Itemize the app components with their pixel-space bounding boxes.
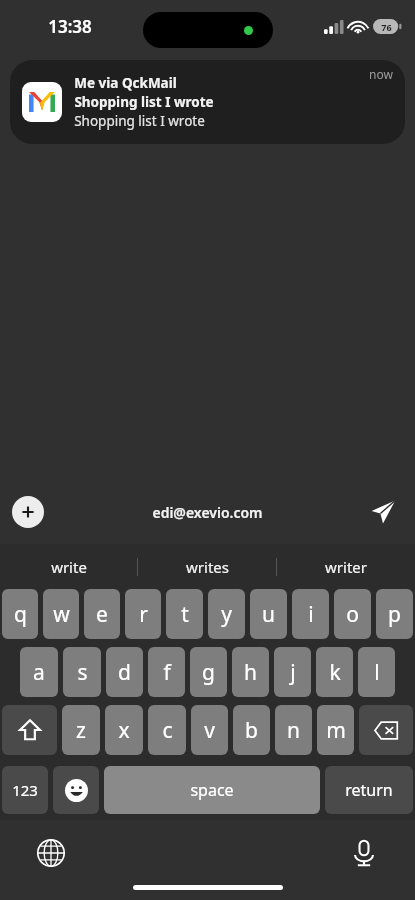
button[interactable]: k bbox=[316, 647, 353, 697]
button[interactable]: p bbox=[376, 589, 413, 639]
button[interactable]: Backspace bbox=[359, 705, 413, 755]
button[interactable]: t bbox=[166, 589, 203, 639]
button[interactable]: f bbox=[148, 647, 185, 697]
button[interactable]: z bbox=[62, 705, 100, 755]
staticText: t bbox=[181, 600, 189, 629]
staticText: o bbox=[346, 600, 359, 629]
button[interactable]: 123 bbox=[2, 766, 48, 814]
button[interactable]: s bbox=[63, 647, 101, 697]
staticText: c bbox=[162, 716, 173, 745]
button[interactable]: h bbox=[232, 647, 269, 697]
staticText: writes bbox=[186, 557, 229, 577]
staticText: z bbox=[76, 716, 86, 745]
staticText: a bbox=[33, 658, 45, 687]
staticText: space bbox=[190, 779, 234, 801]
button[interactable]: y bbox=[208, 589, 245, 639]
staticText: j bbox=[290, 658, 296, 687]
button[interactable]: write bbox=[0, 544, 137, 589]
staticText: h bbox=[244, 658, 257, 687]
staticText: b bbox=[245, 716, 258, 745]
button[interactable]: Voice input bbox=[343, 832, 385, 874]
button[interactable]: l bbox=[358, 647, 395, 697]
staticText: edi@exevio.com bbox=[152, 503, 263, 522]
staticText: s bbox=[77, 658, 88, 687]
staticText: n bbox=[287, 716, 300, 745]
staticText: f bbox=[163, 658, 171, 687]
button[interactable]: r bbox=[125, 589, 161, 639]
staticText: 123 bbox=[12, 780, 38, 800]
staticText: Shopping list I wrote bbox=[74, 93, 214, 111]
button[interactable]: j bbox=[274, 647, 311, 697]
button[interactable]: b bbox=[233, 705, 270, 755]
button[interactable]: g bbox=[190, 647, 227, 697]
button[interactable]: Add attachment bbox=[12, 496, 44, 528]
staticText: Me via QckMail bbox=[74, 74, 177, 92]
staticText: y bbox=[221, 600, 232, 629]
button[interactable]: m bbox=[317, 705, 354, 755]
button[interactable]: Change keyboard bbox=[30, 832, 72, 874]
button[interactable]: c bbox=[148, 705, 186, 755]
button[interactable]: x bbox=[105, 705, 143, 755]
button[interactable]: writer bbox=[277, 544, 415, 589]
button[interactable]: q bbox=[2, 589, 38, 639]
staticText: x bbox=[118, 716, 130, 745]
staticText: Shopping list I wrote bbox=[74, 112, 205, 130]
staticText: now bbox=[369, 66, 393, 82]
button[interactable]: w bbox=[43, 589, 79, 639]
staticText: m bbox=[326, 716, 346, 745]
button[interactable]: Send bbox=[363, 492, 403, 532]
staticText: k bbox=[329, 658, 341, 687]
staticText: v bbox=[204, 716, 215, 745]
staticText: return bbox=[345, 779, 393, 801]
button[interactable]: o bbox=[334, 589, 371, 639]
button[interactable]: Shift bbox=[2, 705, 57, 755]
button[interactable]: space bbox=[104, 766, 320, 814]
button[interactable]: i bbox=[292, 589, 329, 639]
staticText: write bbox=[51, 557, 87, 577]
button[interactable]: writes bbox=[138, 544, 276, 589]
staticText: 13:38 bbox=[48, 15, 92, 38]
staticText: writer bbox=[325, 557, 367, 577]
staticText: u bbox=[262, 600, 275, 629]
staticText: 76 bbox=[381, 21, 392, 33]
button[interactable]: d bbox=[106, 647, 143, 697]
staticText: d bbox=[118, 658, 131, 687]
staticText: w bbox=[53, 600, 70, 629]
button[interactable]: v bbox=[191, 705, 228, 755]
button[interactable]: return bbox=[325, 766, 413, 814]
button[interactable]: n bbox=[275, 705, 312, 755]
staticText: q bbox=[14, 600, 27, 629]
staticText: g bbox=[202, 658, 215, 687]
staticText: p bbox=[388, 600, 401, 629]
button[interactable]: a bbox=[20, 647, 58, 697]
staticText: e bbox=[96, 600, 108, 629]
button[interactable]: Me via QckMail bbox=[10, 60, 405, 144]
button[interactable]: Emoji bbox=[53, 766, 99, 814]
staticText: l bbox=[374, 658, 380, 687]
staticText: i bbox=[308, 600, 314, 629]
staticText: r bbox=[139, 600, 148, 629]
button[interactable]: e bbox=[84, 589, 120, 639]
button[interactable]: u bbox=[250, 589, 287, 639]
